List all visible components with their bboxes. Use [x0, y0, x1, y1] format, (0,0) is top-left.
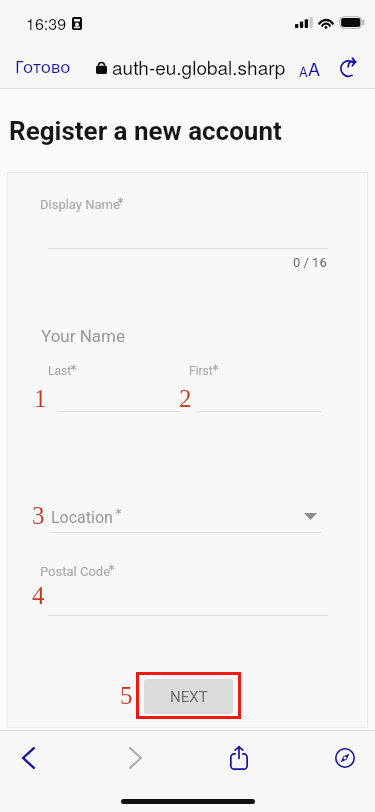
button[interactable]: Forward	[107, 734, 164, 782]
button[interactable]: Back	[0, 734, 57, 782]
staticText: Your Name	[41, 326, 126, 346]
button[interactable]: Text size options	[294, 48, 326, 86]
staticText: 2	[179, 385, 192, 413]
staticText: Display Name	[40, 197, 120, 212]
staticText: Register a new account	[9, 116, 282, 146]
button[interactable]: Reload page	[329, 48, 367, 86]
button[interactable]: Open in Safari	[316, 734, 373, 782]
staticText: 0 / 16	[293, 255, 327, 270]
button[interactable]: Готово	[0, 48, 81, 85]
staticText: 4	[32, 582, 45, 610]
staticText: NEXT	[170, 688, 208, 706]
staticText: 5	[120, 682, 133, 710]
staticText: 16:39	[26, 12, 67, 35]
staticText: auth-eu.global.sharp	[112, 53, 286, 80]
staticText: A	[308, 55, 321, 81]
button[interactable]: NEXT	[144, 679, 233, 714]
staticText: 3	[32, 502, 45, 530]
staticText: Postal Code	[40, 564, 111, 579]
staticText: A	[299, 62, 308, 81]
button[interactable]: auth-eu.global.sharp	[96, 53, 286, 80]
staticText: Last	[48, 364, 72, 378]
button[interactable]: Share	[210, 734, 267, 782]
staticText: 1	[34, 385, 47, 413]
staticText: Location	[51, 508, 113, 527]
staticText: First	[189, 364, 213, 378]
